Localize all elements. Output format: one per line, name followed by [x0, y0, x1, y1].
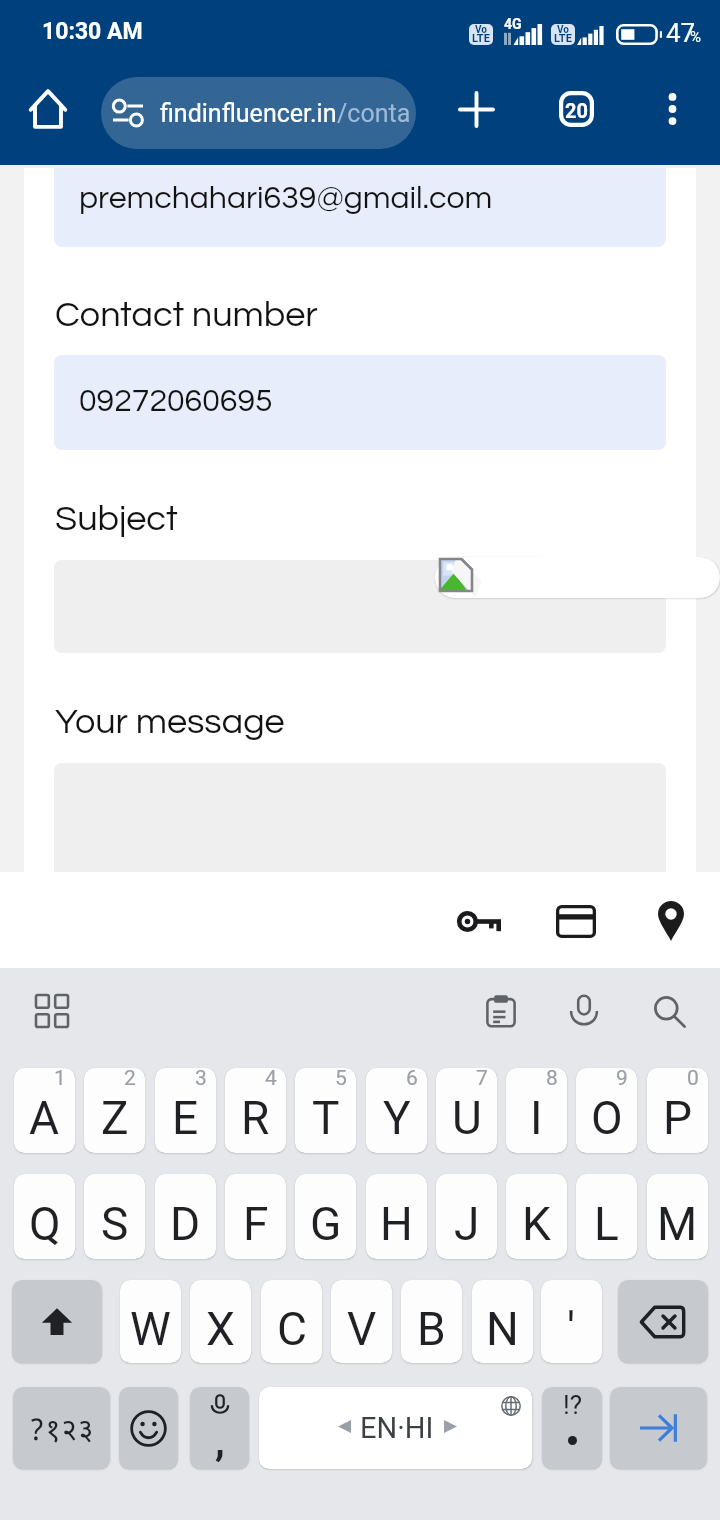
button[interactable]: H: [366, 1174, 427, 1259]
staticText: 3: [195, 1068, 207, 1091]
staticText: premchahari639@gmail.com: [79, 182, 493, 215]
button[interactable]: Space: [259, 1387, 532, 1469]
button[interactable]: Voice input: [559, 986, 608, 1035]
button[interactable]: findinfluencer.in: [101, 77, 416, 149]
staticText: Subject: [55, 500, 178, 537]
staticText: 5: [335, 1068, 347, 1091]
button[interactable]: Shift: [12, 1280, 102, 1363]
staticText: 9: [616, 1068, 628, 1091]
button[interactable]: E: [155, 1068, 216, 1153]
staticText: 0: [687, 1068, 699, 1091]
staticText: Q: [29, 1197, 61, 1251]
button[interactable]: I: [506, 1068, 567, 1153]
button[interactable]: Toolbar: [27, 986, 76, 1035]
staticText: I: [530, 1091, 543, 1145]
button[interactable]: S: [84, 1174, 145, 1259]
staticText: G: [310, 1197, 342, 1251]
button[interactable]: W: [120, 1280, 181, 1363]
button[interactable]: Tabs: [542, 75, 610, 143]
button[interactable]: Emoji: [119, 1387, 178, 1469]
staticText: D: [170, 1197, 201, 1251]
staticText: Z: [101, 1091, 129, 1145]
button[interactable]: Enter: [610, 1387, 707, 1469]
staticText: T: [312, 1091, 340, 1145]
button[interactable]: T: [295, 1068, 356, 1153]
button[interactable]: New tab: [442, 75, 510, 143]
staticText: LTE: [554, 32, 572, 45]
staticText: P: [663, 1091, 693, 1145]
staticText: L: [594, 1197, 619, 1251]
staticText: 1: [54, 1068, 66, 1091]
staticText: E: [172, 1091, 199, 1145]
staticText: /conta: [337, 99, 411, 128]
staticText: R: [241, 1091, 270, 1145]
button[interactable]: P: [647, 1068, 708, 1153]
button[interactable]: A: [14, 1068, 75, 1153]
button[interactable]: J: [436, 1174, 497, 1259]
button[interactable]: ': [541, 1280, 602, 1363]
button[interactable]: N: [472, 1280, 533, 1363]
button[interactable]: C: [261, 1280, 322, 1363]
staticText: J: [454, 1197, 480, 1251]
button[interactable]: Backspace: [618, 1280, 708, 1363]
button[interactable]: Home: [14, 75, 82, 143]
staticText: O: [591, 1091, 623, 1145]
staticText: U: [452, 1091, 482, 1145]
button[interactable]: ?१२३: [13, 1387, 110, 1469]
button[interactable]: F: [225, 1174, 286, 1259]
staticText: 47: [666, 18, 696, 48]
staticText: C: [277, 1302, 307, 1356]
staticText: !?: [563, 1390, 582, 1420]
staticText: 8: [546, 1068, 558, 1091]
staticText: Y: [383, 1091, 411, 1145]
staticText: A: [29, 1091, 60, 1145]
staticText: EN·HI: [360, 1411, 434, 1445]
button[interactable]: V: [331, 1280, 392, 1363]
staticText: F: [243, 1197, 269, 1251]
staticText: N: [486, 1302, 519, 1356]
staticText: H: [380, 1197, 413, 1251]
button[interactable]: Z: [84, 1068, 145, 1153]
button[interactable]: X: [190, 1280, 251, 1363]
staticText: findinfluencer.in: [160, 99, 337, 128]
staticText: 7: [476, 1068, 488, 1091]
button[interactable]: B: [401, 1280, 462, 1363]
staticText: B: [417, 1302, 446, 1356]
button[interactable]: U: [436, 1068, 497, 1153]
button[interactable]: O: [576, 1068, 637, 1153]
staticText: 20: [565, 99, 588, 122]
staticText: M: [657, 1197, 698, 1251]
staticText: Vo: [557, 24, 569, 36]
button[interactable]: G: [295, 1174, 356, 1259]
button[interactable]: Q: [14, 1174, 75, 1259]
staticText: ,: [215, 1418, 225, 1465]
staticText: Contact number: [55, 296, 318, 333]
button[interactable]: Y: [366, 1068, 427, 1153]
staticText: 6: [406, 1068, 418, 1091]
button[interactable]: Passwords: [434, 877, 522, 965]
button[interactable]: Clipboard: [476, 986, 525, 1035]
staticText: 2: [124, 1068, 136, 1091]
staticText: ?१२३: [29, 1408, 95, 1449]
button[interactable]: Search: [644, 986, 693, 1035]
button[interactable]: Payment methods: [532, 877, 620, 965]
button[interactable]: Comma and voice input: [190, 1387, 249, 1469]
button[interactable]: M: [647, 1174, 708, 1259]
button[interactable]: L: [576, 1174, 637, 1259]
button[interactable]: D: [155, 1174, 216, 1259]
button[interactable]: More options: [638, 75, 706, 143]
staticText: Vo: [475, 24, 487, 36]
staticText: W: [130, 1302, 171, 1356]
staticText: S: [101, 1197, 129, 1251]
button[interactable]: R: [225, 1068, 286, 1153]
staticText: X: [206, 1302, 235, 1356]
staticText: Your message: [55, 703, 285, 740]
staticText: %: [690, 28, 701, 46]
staticText: V: [347, 1302, 377, 1356]
staticText: 09272060695: [79, 385, 273, 418]
button[interactable]: Addresses: [627, 877, 715, 965]
button[interactable]: K: [506, 1174, 567, 1259]
staticText: K: [522, 1197, 551, 1251]
button[interactable]: Period: [542, 1387, 602, 1469]
staticText: ': [567, 1302, 576, 1356]
